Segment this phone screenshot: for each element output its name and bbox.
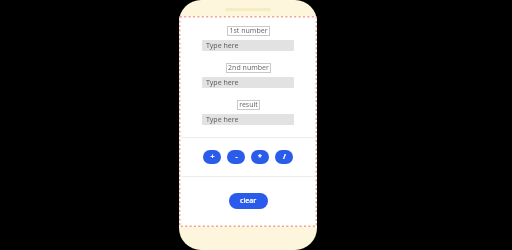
button[interactable]: /	[275, 150, 293, 164]
staticText: /	[283, 152, 286, 162]
button[interactable]: *	[251, 150, 269, 164]
button[interactable]: Type here	[202, 40, 294, 51]
staticText: Type here	[206, 115, 239, 125]
staticText: Type here	[206, 41, 239, 51]
button[interactable]: +	[203, 150, 221, 164]
button[interactable]: clear	[229, 193, 268, 209]
staticText: +	[210, 152, 215, 162]
button[interactable]: Type here	[202, 77, 294, 88]
staticText: 1st number	[229, 26, 268, 36]
staticText: result	[239, 100, 258, 110]
staticText: clear	[240, 196, 257, 206]
button[interactable]: -	[227, 150, 245, 164]
staticText: *	[258, 152, 262, 162]
staticText: Type here	[206, 78, 239, 88]
staticText: 2nd number	[228, 63, 269, 73]
button[interactable]: Type here	[202, 114, 294, 125]
staticText: -	[235, 152, 238, 162]
